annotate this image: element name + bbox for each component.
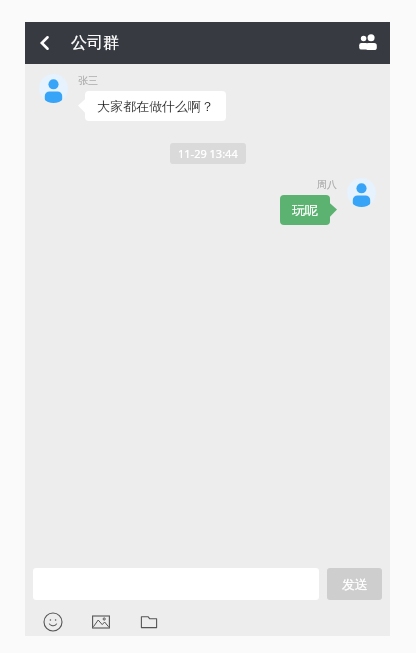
button[interactable]: Back [25, 22, 65, 64]
button[interactable]: Photo [87, 608, 115, 636]
button[interactable]: Group members [346, 22, 390, 64]
button[interactable]: 玩呢 [280, 195, 330, 225]
staticText: 大家都在做什么啊？ [97, 98, 214, 114]
button[interactable]: 发送 [327, 568, 382, 600]
button[interactable]: Files [135, 608, 163, 636]
staticText: 发送 [342, 576, 368, 592]
button[interactable]: Emoji [39, 608, 67, 636]
staticText: 11-29 13:44 [178, 146, 238, 161]
button[interactable]: 大家都在做什么啊？ [85, 91, 226, 121]
staticText: 公司群 [71, 33, 119, 53]
staticText: 周八 [317, 178, 337, 191]
staticText: 张三 [78, 74, 98, 87]
staticText: 玩呢 [292, 202, 318, 218]
